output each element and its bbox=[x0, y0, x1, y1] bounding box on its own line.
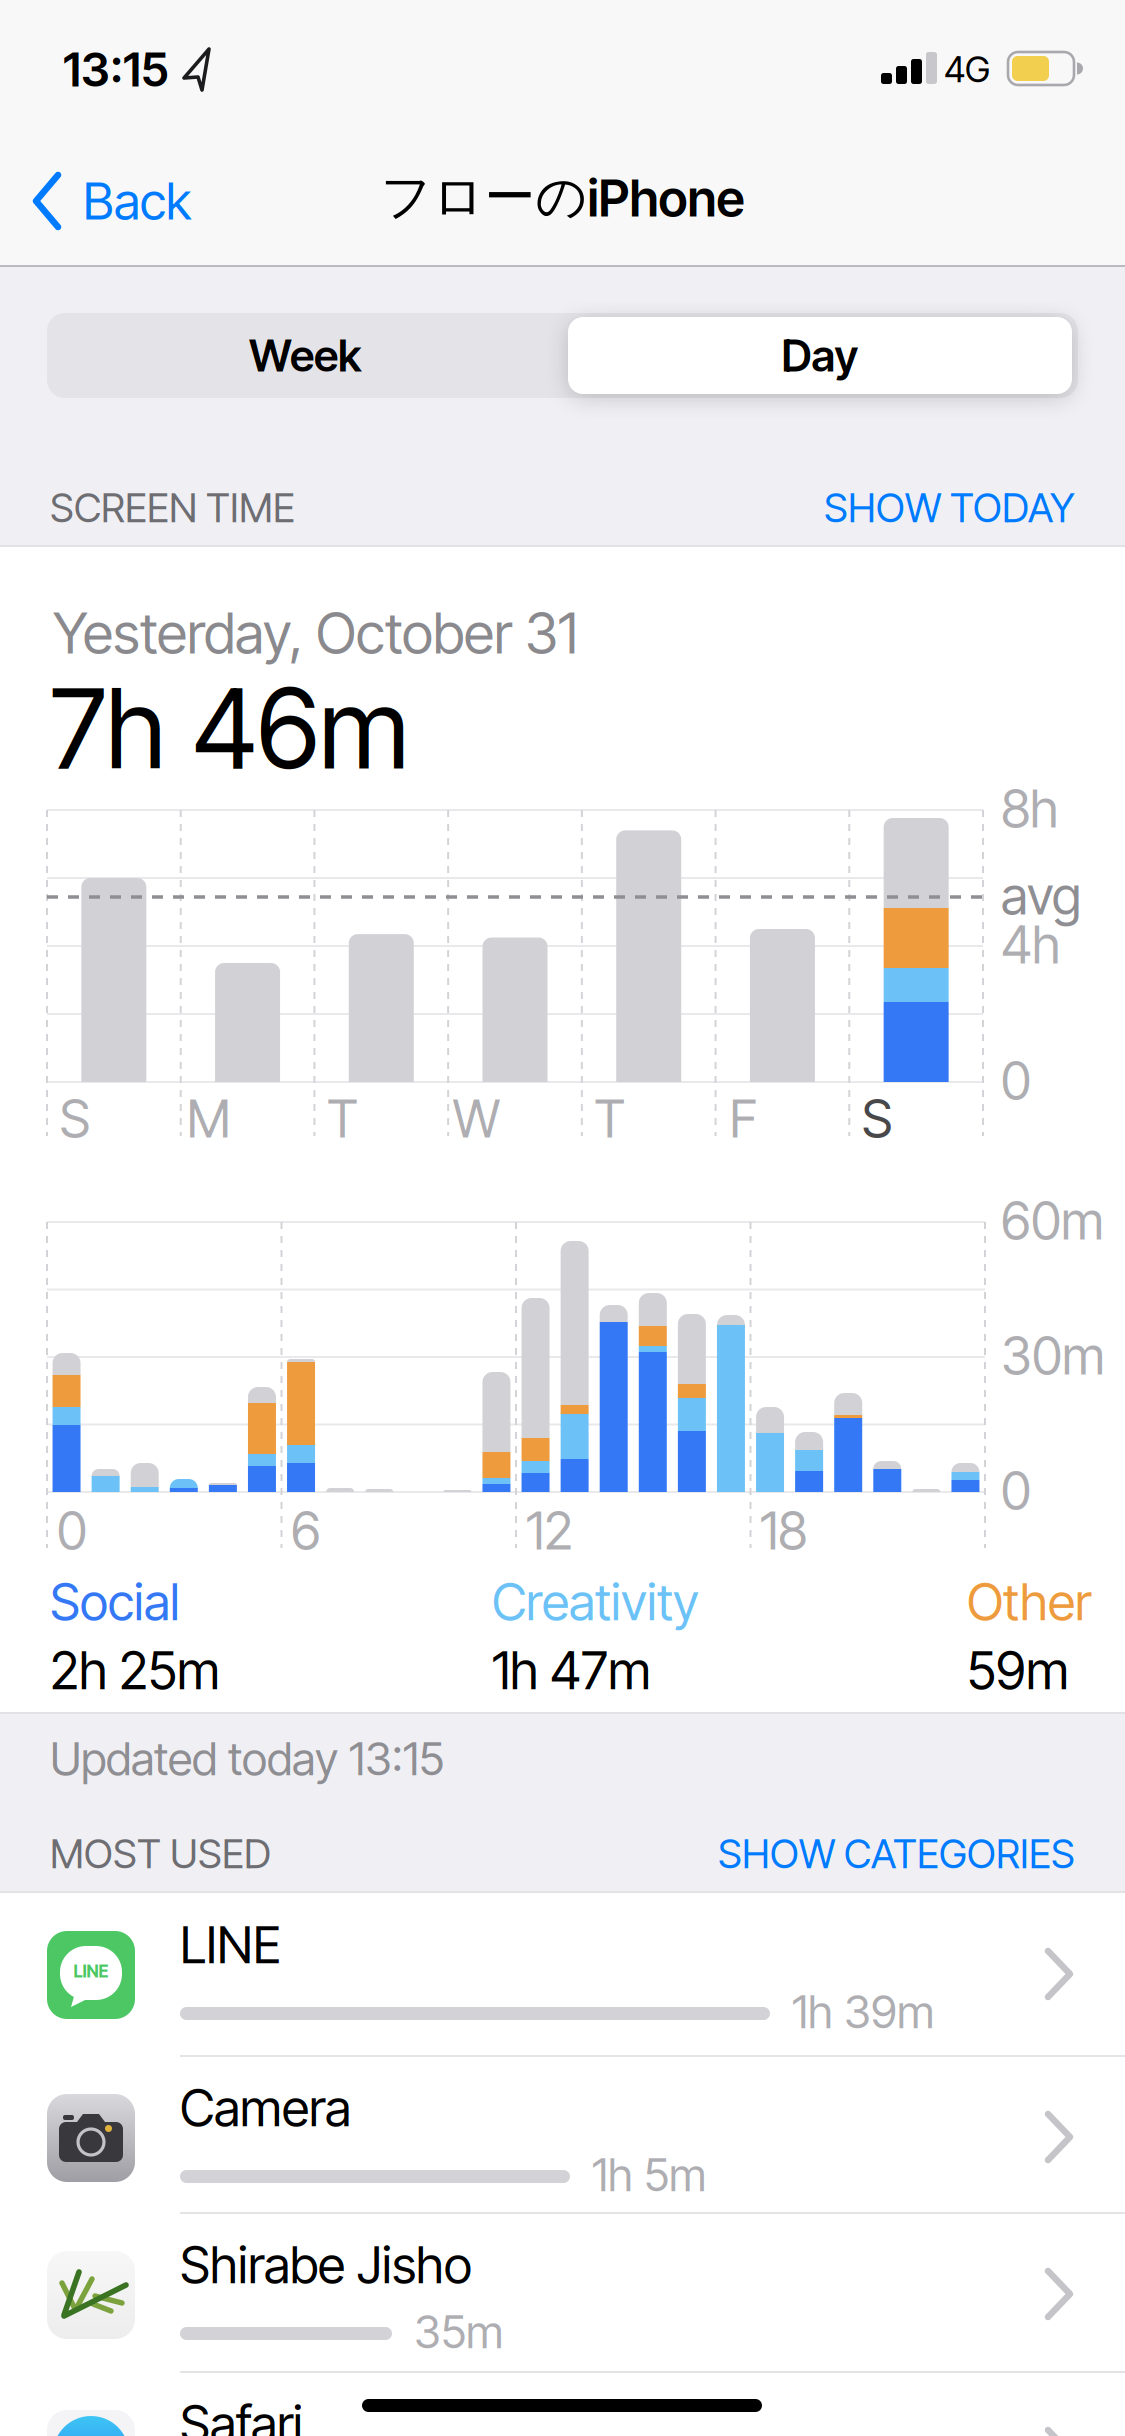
staticText: 1h 39m bbox=[792, 1985, 934, 2038]
staticText: Other bbox=[967, 1572, 1091, 1632]
button[interactable]: Day bbox=[568, 317, 1072, 394]
staticText: 13:15 bbox=[63, 42, 169, 97]
staticText: SHOW CATEGORIES bbox=[718, 1830, 1075, 1877]
staticText: LINE bbox=[73, 1961, 108, 1981]
staticText: 59m bbox=[967, 1640, 1069, 1701]
staticText: Safari bbox=[180, 2394, 303, 2436]
staticText: avg bbox=[1001, 865, 1081, 926]
staticText: Creativity bbox=[492, 1572, 699, 1632]
staticText: Shirabe Jisho bbox=[180, 2235, 472, 2295]
staticText: Camera bbox=[180, 2078, 351, 2138]
staticText: 18 bbox=[760, 1500, 807, 1561]
staticText: 6 bbox=[291, 1500, 321, 1561]
staticText: W bbox=[453, 1088, 500, 1149]
staticText: 4G bbox=[944, 48, 990, 90]
staticText: SCREEN TIME bbox=[50, 484, 295, 531]
staticText: M bbox=[187, 1088, 231, 1149]
button[interactable]: SHOW CATEGORIES bbox=[718, 1830, 1075, 1877]
button[interactable]: LINE bbox=[0, 1893, 1125, 2056]
staticText: SHOW TODAY bbox=[824, 484, 1075, 531]
staticText: 60m bbox=[1001, 1190, 1104, 1251]
staticText: F bbox=[730, 1088, 758, 1149]
staticText: 1h 47m bbox=[492, 1640, 651, 1701]
staticText: 4h bbox=[1001, 914, 1060, 975]
button[interactable]: Back bbox=[33, 168, 191, 234]
button[interactable]: Shirabe Jisho bbox=[0, 2213, 1125, 2376]
staticText: T bbox=[594, 1088, 625, 1149]
staticText: Updated today 13:15 bbox=[50, 1732, 444, 1785]
staticText: Week bbox=[249, 329, 361, 381]
staticText: 7h 46m bbox=[50, 664, 409, 793]
button[interactable]: Camera bbox=[0, 2056, 1125, 2219]
staticText: 0 bbox=[1001, 1460, 1031, 1521]
staticText: Social bbox=[50, 1572, 180, 1632]
staticText: Yesterday, October 31 bbox=[53, 600, 578, 666]
staticText: S bbox=[59, 1088, 90, 1149]
button[interactable]: SHOW TODAY bbox=[824, 484, 1075, 531]
staticText: T bbox=[327, 1088, 358, 1149]
button[interactable]: Safari bbox=[0, 2372, 1125, 2436]
staticText: Back bbox=[83, 171, 191, 231]
staticText: S bbox=[862, 1088, 893, 1149]
staticText: 2h 25m bbox=[50, 1640, 220, 1701]
staticText: 30m bbox=[1001, 1325, 1105, 1386]
staticText: 0 bbox=[1001, 1050, 1031, 1111]
staticText: Day bbox=[781, 329, 858, 381]
staticText: LINE bbox=[180, 1915, 281, 1975]
staticText: 35m bbox=[414, 2305, 503, 2358]
staticText: 1h 5m bbox=[592, 2148, 706, 2201]
staticText: 0 bbox=[57, 1500, 87, 1561]
staticText: MOST USED bbox=[50, 1830, 271, 1877]
staticText: 12 bbox=[526, 1500, 573, 1561]
staticText: フローのiPhone bbox=[380, 166, 744, 228]
staticText: 8h bbox=[1001, 778, 1058, 839]
button[interactable]: Week bbox=[55, 313, 555, 398]
